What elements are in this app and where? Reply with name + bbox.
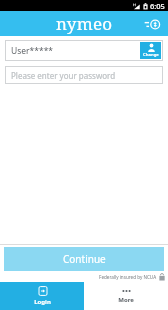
button[interactable]: Rates (142, 15, 162, 33)
staticText: Federally insured by NCUA (99, 274, 157, 280)
staticText: Change (143, 52, 159, 58)
staticText: Please enter your password (11, 70, 116, 81)
staticText: 6:05 (150, 1, 165, 11)
button[interactable]: Change (140, 42, 161, 59)
staticText: More (118, 296, 134, 304)
staticText: Login (34, 298, 51, 306)
staticText: User***** (11, 45, 54, 57)
button[interactable]: More (84, 282, 168, 310)
button[interactable]: User***** (5, 40, 138, 61)
button[interactable]: Continue (4, 247, 164, 271)
button[interactable]: Login (0, 282, 84, 310)
staticText: nymeo (56, 12, 113, 35)
staticText: Continue (63, 252, 106, 266)
button[interactable]: Please enter your password (5, 66, 163, 84)
